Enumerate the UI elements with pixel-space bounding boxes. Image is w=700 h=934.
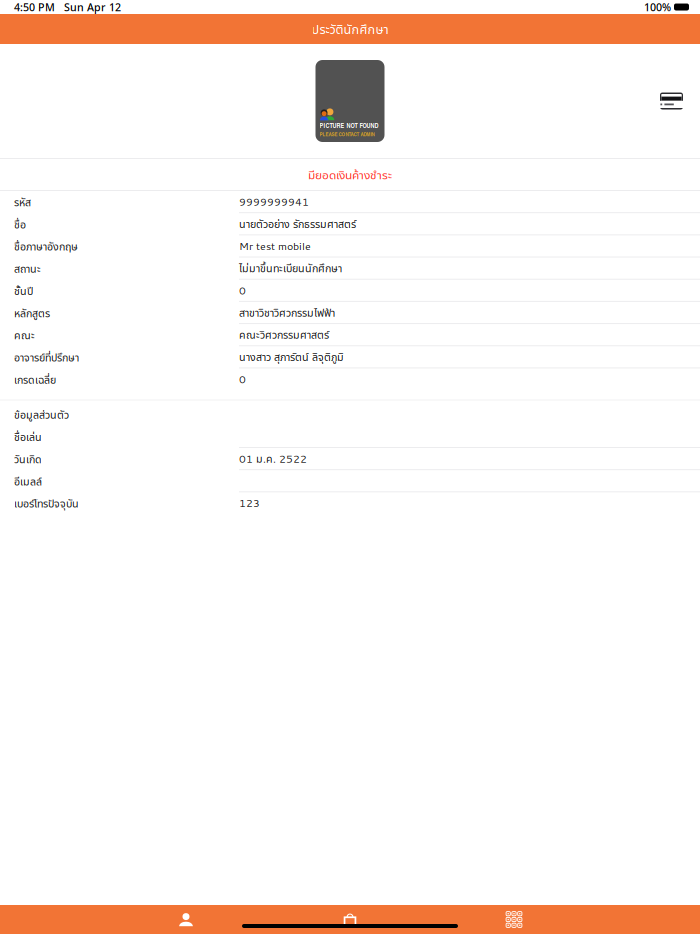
staticText: Mr test mobile (239, 238, 311, 253)
button[interactable]: Profile (104, 905, 268, 934)
staticText: คณะ (14, 328, 35, 342)
staticText: 9999999941 (239, 194, 309, 209)
staticText: อีเมลล์ (14, 474, 42, 488)
staticText: สถานะ (14, 261, 41, 276)
staticText: Sun Apr 12 (55, 0, 121, 14)
staticText: ไม่มาขึ้นทะเบียนนักศึกษา (239, 261, 342, 275)
staticText: นางสาว สุภารัตน์ ลิจุติภูมิ (239, 350, 344, 364)
staticText: 0 (239, 283, 246, 298)
staticText: ชื่อ (14, 217, 26, 231)
staticText: นายตัวอย่าง รักธรรมศาสตร์ (239, 216, 356, 231)
staticText: 01 ม.ค. 2522 (239, 451, 307, 466)
staticText: 0 (239, 371, 246, 387)
staticText: 100% (644, 0, 671, 14)
staticText: ชั้นปี (14, 283, 33, 298)
staticText: ชื่อเล่น (14, 430, 42, 444)
staticText: 123 (239, 495, 260, 510)
staticText: เบอร์โทรปัจจุบัน (14, 496, 79, 511)
staticText: อาจารย์ที่ปรึกษา (14, 350, 79, 365)
staticText: 4:50 PM (14, 0, 55, 14)
staticText: ชื่อภาษาอังกฤษ (14, 239, 78, 254)
staticText: รหัส (14, 195, 31, 209)
staticText: มียอดเงินค้างชำระ (308, 166, 392, 183)
staticText: คณะวิศวกรรมศาสตร์ (239, 327, 329, 342)
staticText: PLEASE CONTACT ADMIN (319, 130, 374, 138)
staticText: วันเกิด (14, 452, 42, 466)
staticText: ข้อมูลส่วนตัว (14, 407, 69, 422)
staticText: หลักสูตร (14, 306, 50, 320)
staticText: PICTURE NOT FOUND (319, 121, 378, 130)
staticText: เกรดเฉลี่ย (14, 372, 56, 387)
button[interactable]: Courses (268, 905, 432, 934)
button[interactable]: More (432, 905, 596, 934)
staticText: ประวัตินักศึกษา (311, 20, 388, 38)
button[interactable]: Payments (654, 86, 689, 115)
staticText: สาขาวิชาวิศวกรรมไฟฟ้า (239, 305, 335, 320)
